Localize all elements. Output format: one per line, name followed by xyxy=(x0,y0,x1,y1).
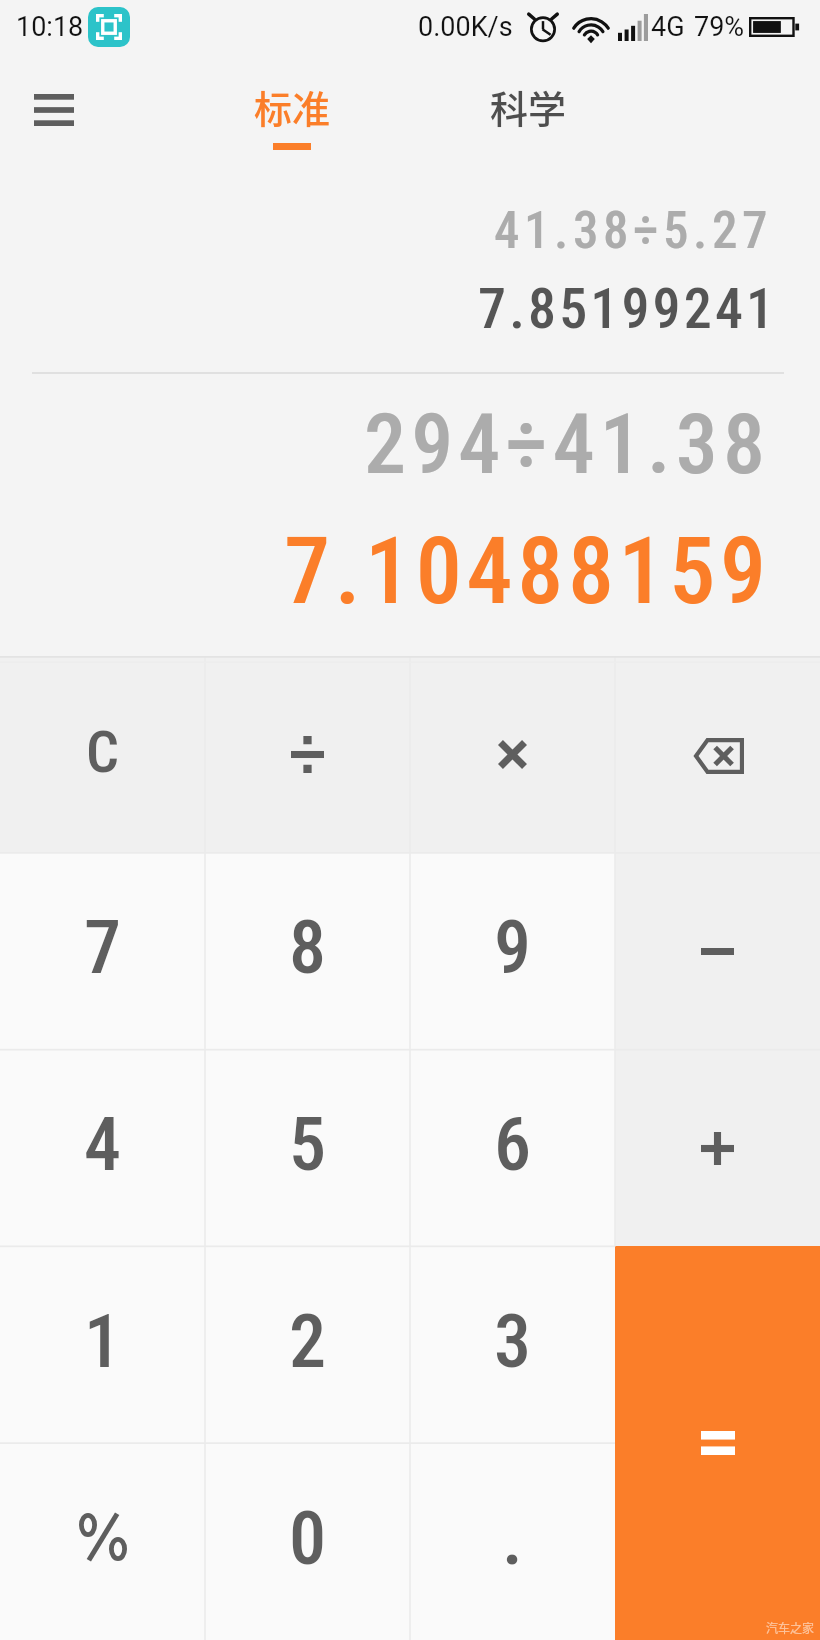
button[interactable]: 4 xyxy=(0,1050,205,1247)
staticText: 9 xyxy=(494,904,532,991)
staticText: 6 xyxy=(494,1101,532,1188)
button[interactable]: Minus xyxy=(615,853,820,1050)
button[interactable]: 9 xyxy=(410,853,615,1050)
staticText: 3 xyxy=(494,1298,532,1385)
staticText: 7 xyxy=(84,904,122,991)
staticText: 5 xyxy=(289,1101,327,1188)
staticText: 294÷41.38 xyxy=(364,395,771,493)
staticText: 4G xyxy=(651,11,685,43)
button[interactable]: 7 xyxy=(0,853,205,1050)
button[interactable]: 标准 xyxy=(216,56,368,165)
staticText: 79% xyxy=(694,11,745,43)
button[interactable]: . xyxy=(410,1444,615,1640)
staticText: 2 xyxy=(289,1298,327,1385)
button[interactable]: 0 xyxy=(205,1444,410,1640)
button[interactable]: 6 xyxy=(410,1050,615,1247)
button[interactable]: 8 xyxy=(205,853,410,1050)
button[interactable]: 2 xyxy=(205,1247,410,1444)
staticText: 汽车之家 xyxy=(766,1619,815,1636)
staticText: 10:18 xyxy=(16,11,84,43)
button[interactable]: Plus xyxy=(615,1050,820,1247)
staticText: C xyxy=(86,718,119,786)
staticText: 7.85199241 xyxy=(478,276,778,342)
button[interactable]: Divide xyxy=(205,656,410,853)
staticText: 1 xyxy=(84,1298,122,1385)
button[interactable]: Equals xyxy=(615,1246,820,1640)
staticText: 科学 xyxy=(490,79,567,134)
button[interactable]: 1 xyxy=(0,1247,205,1444)
button[interactable]: Menu xyxy=(14,70,94,150)
button[interactable]: Screenshot xyxy=(88,7,130,47)
button[interactable]: 5 xyxy=(205,1050,410,1247)
button[interactable]: Percent xyxy=(0,1444,205,1640)
button[interactable]: 科学 xyxy=(452,56,604,165)
button[interactable]: 3 xyxy=(410,1247,615,1444)
button[interactable]: Backspace xyxy=(615,656,820,853)
staticText: 41.38÷5.27 xyxy=(494,201,772,261)
staticText: 0.00K/s xyxy=(418,11,513,43)
staticText: 7.10488159 xyxy=(284,518,771,626)
button[interactable]: C xyxy=(0,656,205,853)
staticText: . xyxy=(502,1495,523,1582)
staticText: 标准 xyxy=(254,79,331,134)
staticText: 0 xyxy=(289,1495,327,1582)
staticText: 4 xyxy=(84,1101,122,1188)
staticText: 8 xyxy=(289,904,327,991)
button[interactable]: Multiply xyxy=(410,656,615,853)
